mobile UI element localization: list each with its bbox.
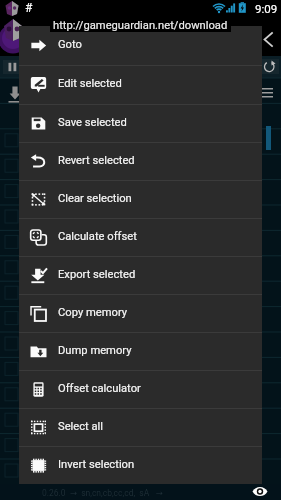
staticText: 0.26.0 → sn,cn,cb,cc,cd, sA → [42,488,163,498]
staticText: Select all [58,420,104,433]
staticText: Save selected [58,116,127,129]
button[interactable]: Copy memory [19,294,262,332]
staticText: Invert selection [58,458,135,471]
staticText: Clear selection [58,192,132,205]
button[interactable]: Offset calculator [19,370,262,408]
staticText: # [25,1,33,15]
staticText: Calculate offset [58,230,137,243]
button[interactable]: Edit selected [19,65,262,104]
staticText: Copy memory [58,306,128,319]
staticText: Export selected [58,268,136,281]
button[interactable]: Goto [19,26,262,65]
staticText: Revert selected [58,154,135,167]
button[interactable]: Save selected [19,104,262,142]
other: Toggle visibility [252,485,268,498]
button[interactable]: Revert selected [19,142,262,180]
button[interactable]: Export selected [19,256,262,294]
staticText: Goto [58,38,82,51]
staticText: Dump memory [58,344,132,357]
staticText: Offset calculator [58,382,141,395]
button[interactable]: Clear selection [19,180,262,218]
button[interactable]: Calculate offset [19,218,262,256]
staticText: http://gameguardian.net/download [53,19,228,32]
button[interactable]: Dump memory [19,332,262,370]
staticText: Edit selected [58,77,122,90]
staticText: 9:09 [255,2,278,15]
button[interactable]: Select all [19,408,262,446]
button[interactable]: Invert selection [19,446,262,484]
